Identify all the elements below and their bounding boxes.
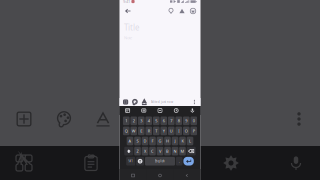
button[interactable]: H xyxy=(164,137,171,145)
button[interactable]: English xyxy=(145,157,175,165)
button[interactable]: C xyxy=(149,147,156,155)
staticText: English xyxy=(155,159,165,163)
button[interactable]: M xyxy=(179,147,186,155)
button[interactable]: Q xyxy=(123,127,130,135)
button[interactable]: Colour xyxy=(44,104,84,134)
staticText: . xyxy=(179,158,180,164)
staticText: 6 xyxy=(163,118,165,123)
staticText: V xyxy=(159,148,161,154)
button[interactable]: More options xyxy=(282,104,316,134)
staticText: 0 xyxy=(193,118,195,123)
button[interactable]: E xyxy=(138,127,144,135)
button[interactable]: . xyxy=(176,157,182,165)
staticText: 3 xyxy=(140,118,142,123)
staticText: Edited just now xyxy=(151,100,173,104)
staticText: 9 xyxy=(185,118,187,123)
button[interactable] xyxy=(173,169,200,180)
button[interactable]: 7 xyxy=(168,116,174,125)
staticText: Y xyxy=(163,128,165,133)
button[interactable]: Shift xyxy=(124,147,133,155)
button[interactable]: U xyxy=(168,127,174,135)
staticText: !#1 xyxy=(128,159,133,163)
button[interactable] xyxy=(184,106,200,115)
staticText: B xyxy=(166,148,169,154)
button[interactable]: K xyxy=(179,137,186,145)
staticText: F xyxy=(151,138,153,144)
button[interactable]: G xyxy=(157,137,163,145)
button[interactable]: 4 xyxy=(145,116,152,125)
staticText: 2 xyxy=(133,118,135,123)
button[interactable]: A xyxy=(127,137,133,145)
button[interactable]: V xyxy=(157,147,163,155)
button[interactable]: Settings xyxy=(197,146,265,180)
button[interactable]: P xyxy=(190,127,197,135)
staticText: X xyxy=(144,148,146,154)
staticText: C xyxy=(151,148,154,154)
staticText: K xyxy=(181,138,183,144)
button[interactable] xyxy=(119,106,136,115)
button[interactable]: I xyxy=(175,127,182,135)
button[interactable]: N xyxy=(172,147,178,155)
button[interactable]: W xyxy=(130,127,137,135)
staticText: Z xyxy=(136,148,138,154)
staticText: P xyxy=(193,128,195,133)
button[interactable]: Clipboard xyxy=(57,146,125,180)
staticText: 7 xyxy=(170,118,172,123)
button[interactable]: Language xyxy=(136,157,144,165)
button[interactable]: Reminder xyxy=(177,5,186,16)
staticText: E xyxy=(140,128,142,133)
button[interactable]: Z xyxy=(134,147,141,155)
button[interactable]: S xyxy=(134,137,141,145)
button[interactable]: 9 xyxy=(183,116,189,125)
button[interactable] xyxy=(119,169,146,180)
staticText: Title xyxy=(124,22,140,33)
button[interactable]: B xyxy=(164,147,171,155)
staticText: D xyxy=(143,138,146,144)
staticText: R xyxy=(148,128,150,133)
staticText: 1 xyxy=(125,118,127,123)
staticText: H xyxy=(166,138,169,144)
button[interactable]: !#1 xyxy=(126,157,135,165)
button[interactable]: 6 xyxy=(160,116,167,125)
button[interactable]: D xyxy=(142,137,148,145)
button[interactable]: Voice input xyxy=(272,146,320,180)
staticText: 5 xyxy=(155,118,157,123)
button[interactable]: X xyxy=(142,147,148,155)
button[interactable]: Insert xyxy=(4,104,44,134)
button[interactable] xyxy=(168,106,184,115)
button[interactable]: F xyxy=(149,137,156,145)
staticText: G xyxy=(158,138,161,144)
button[interactable]: T xyxy=(153,127,159,135)
button[interactable]: Y xyxy=(160,127,167,135)
button[interactable]: 3 xyxy=(138,116,144,125)
staticText: Q xyxy=(125,128,128,133)
button[interactable]: J xyxy=(172,137,178,145)
button[interactable]: Apps xyxy=(0,146,48,180)
staticText: L xyxy=(189,138,191,144)
button[interactable]: Backspace xyxy=(187,147,196,155)
button[interactable]: 8 xyxy=(175,116,182,125)
button[interactable]: 0 xyxy=(190,116,197,125)
staticText: 8 xyxy=(178,118,180,123)
staticText: A xyxy=(128,138,131,144)
button[interactable] xyxy=(146,169,173,180)
staticText: J xyxy=(174,138,175,144)
button[interactable] xyxy=(136,106,152,115)
staticText: W xyxy=(132,128,136,133)
button[interactable] xyxy=(152,106,168,115)
button[interactable]: 2 xyxy=(130,116,137,125)
staticText: M xyxy=(180,148,184,154)
button[interactable]: L xyxy=(187,137,193,145)
button[interactable]: O xyxy=(183,127,189,135)
button[interactable]: More xyxy=(188,5,197,16)
button[interactable]: Return xyxy=(183,157,194,165)
button[interactable]: Text style xyxy=(84,104,122,134)
button[interactable]: Pin xyxy=(166,5,175,16)
button[interactable]: 1 xyxy=(123,116,130,125)
button[interactable]: R xyxy=(145,127,152,135)
staticText: 9:41 xyxy=(123,0,130,4)
staticText: U xyxy=(170,128,173,133)
staticText: I xyxy=(178,128,179,133)
button[interactable]: 5 xyxy=(153,116,159,125)
button[interactable]: Back xyxy=(122,5,133,16)
